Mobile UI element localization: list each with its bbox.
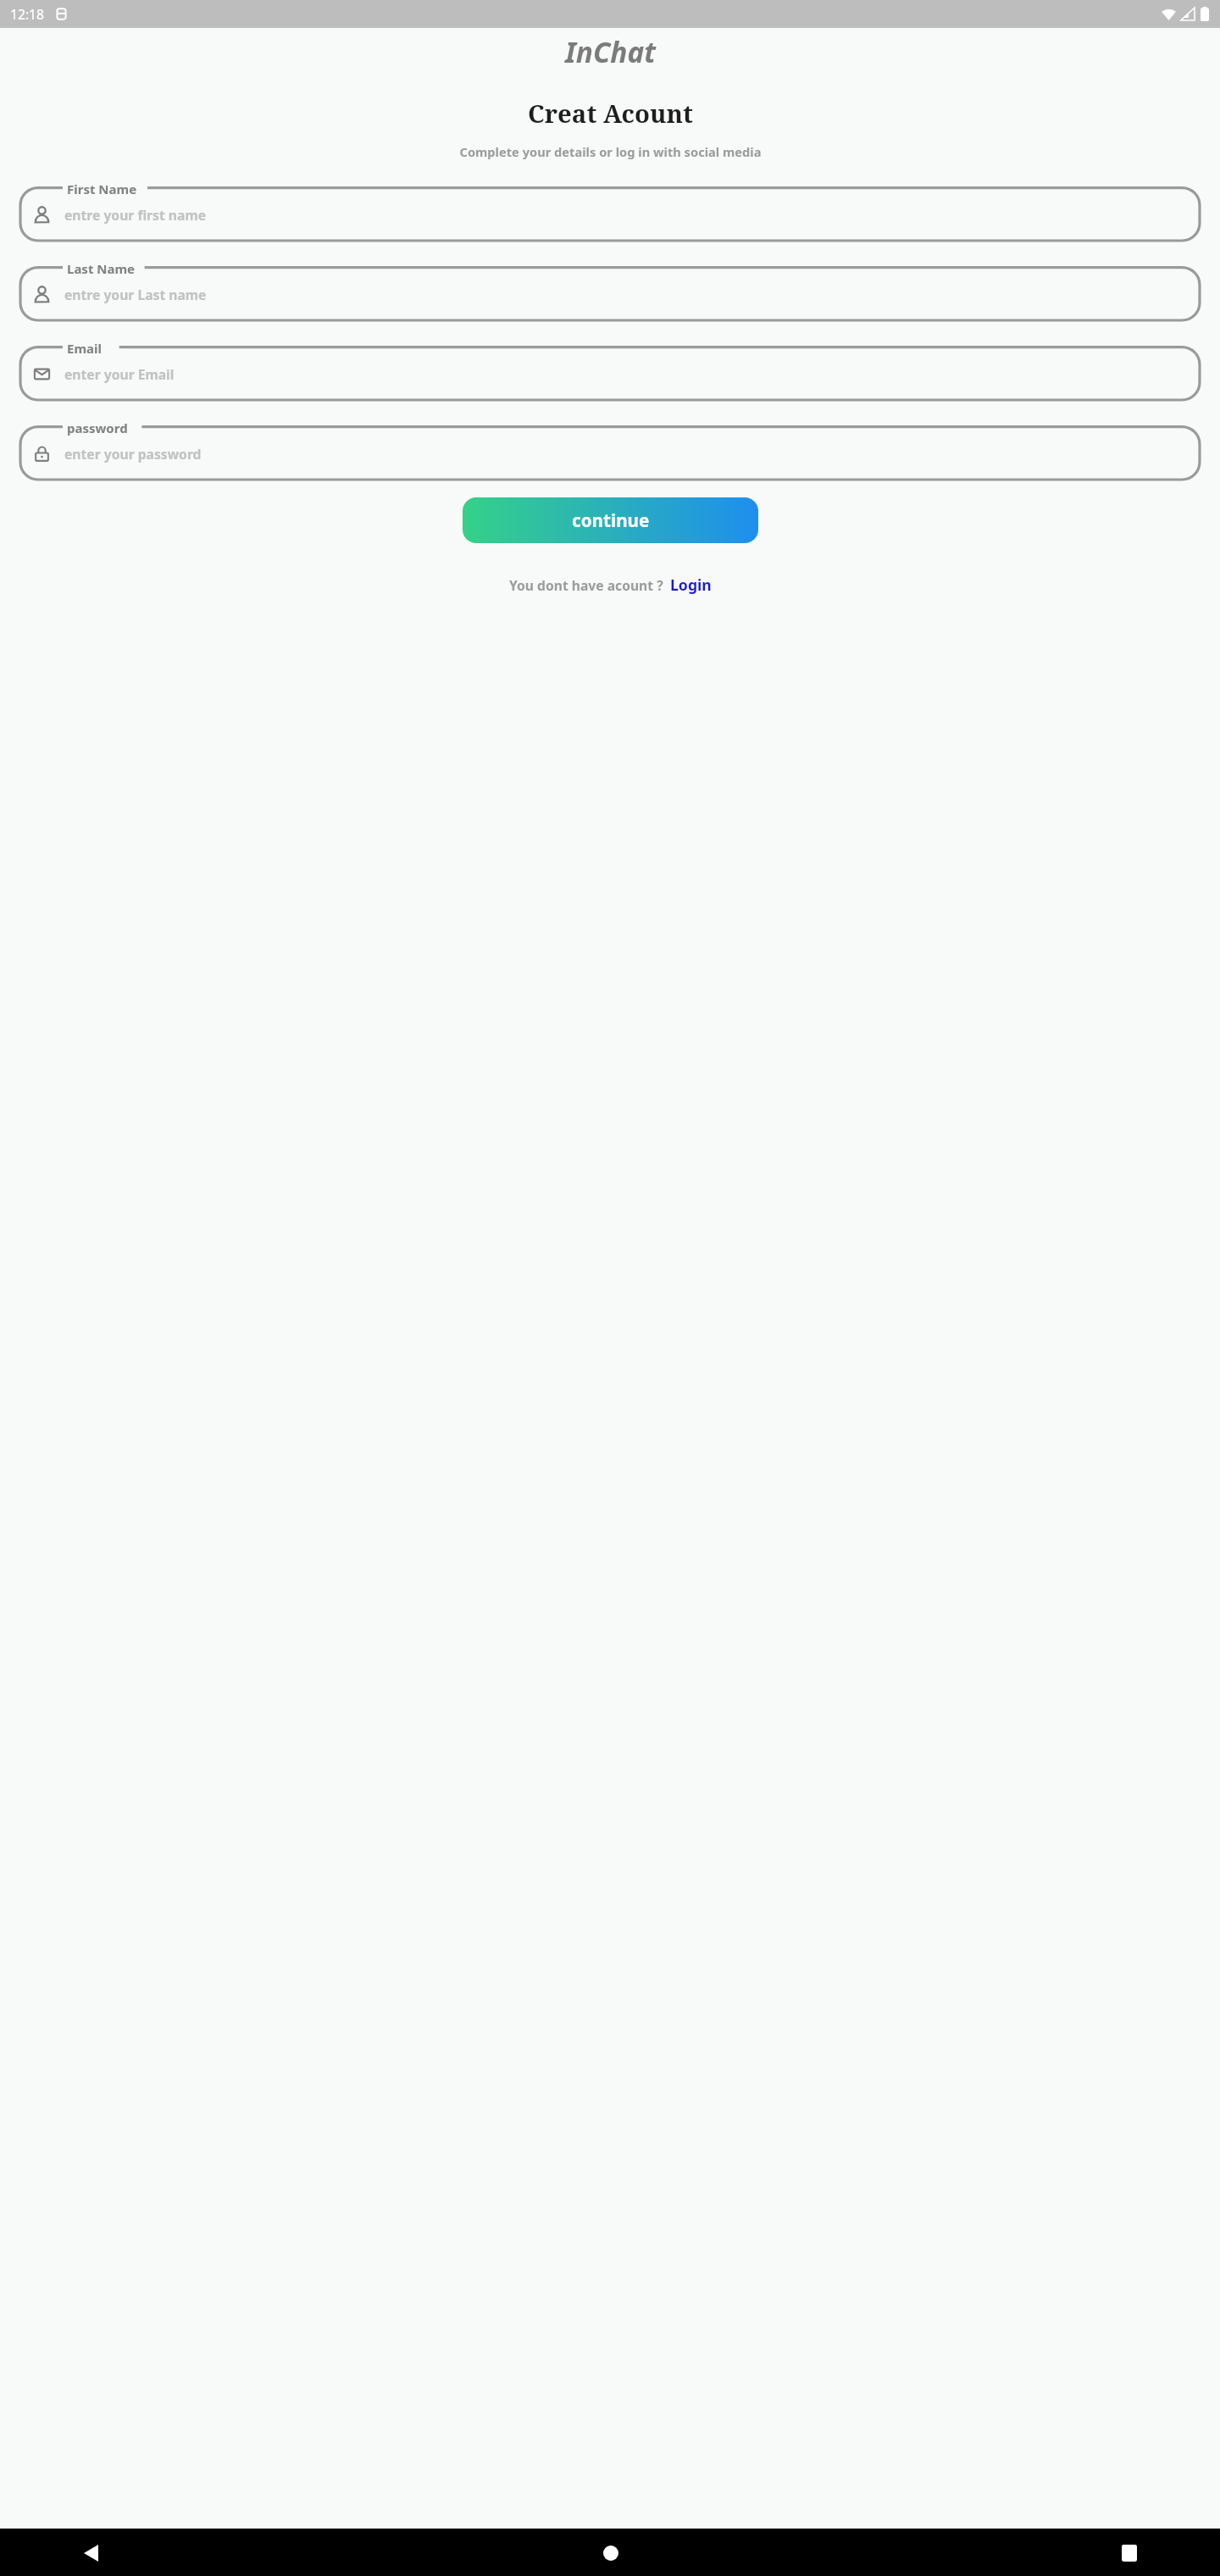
staticText: Login bbox=[670, 575, 712, 595]
button[interactable]: entre your Last name bbox=[20, 268, 1200, 320]
staticText: You dont have acount ? bbox=[509, 576, 663, 594]
staticText: Complete your details or log in with soc… bbox=[459, 143, 762, 160]
staticText: entre your first name bbox=[64, 206, 207, 224]
staticText: InChat bbox=[565, 32, 656, 70]
staticText: password bbox=[67, 419, 128, 436]
staticText: First Name bbox=[67, 180, 137, 197]
button[interactable]: Home bbox=[595, 2537, 626, 2568]
button[interactable]: enter your Email bbox=[20, 347, 1200, 400]
staticText: 12:18 bbox=[10, 5, 45, 23]
staticText: Creat Acount bbox=[528, 97, 693, 130]
button[interactable]: Back bbox=[75, 2537, 107, 2568]
button[interactable]: Recent apps bbox=[1113, 2537, 1145, 2568]
staticText: Last Name bbox=[67, 260, 136, 277]
staticText: Email bbox=[67, 340, 102, 357]
button[interactable]: enter your password bbox=[20, 427, 1200, 480]
button[interactable]: continue bbox=[463, 497, 758, 543]
button[interactable]: Login bbox=[670, 575, 712, 595]
staticText: entre your Last name bbox=[64, 286, 207, 303]
staticText: enter your Email bbox=[64, 365, 175, 383]
staticText: continue bbox=[572, 508, 650, 532]
button[interactable]: entre your first name bbox=[20, 188, 1200, 241]
staticText: enter your password bbox=[64, 445, 202, 463]
